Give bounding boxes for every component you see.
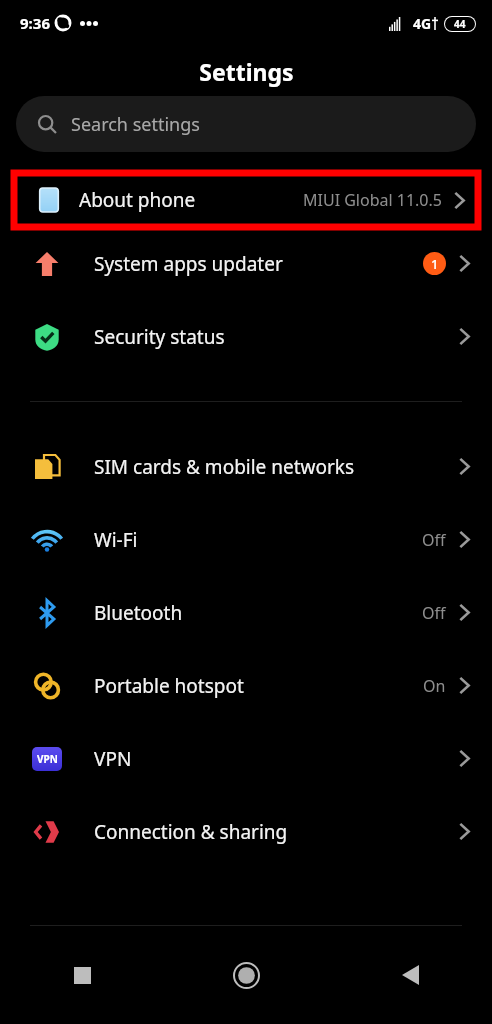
staticText: Search settings [71, 112, 200, 137]
button[interactable]: Wi-Fi [0, 503, 492, 576]
button[interactable]: About phone [19, 173, 473, 227]
staticText: Wi-Fi [94, 527, 138, 553]
staticText: About phone [79, 187, 196, 213]
staticText: Off [422, 602, 446, 624]
button[interactable]: Home [164, 926, 328, 1024]
button[interactable]: VPN [0, 722, 492, 795]
staticText: Portable hotspot [94, 673, 244, 699]
staticText: 4G [413, 14, 432, 33]
staticText: VPN [37, 752, 58, 766]
staticText: 9:36 [20, 13, 50, 33]
button[interactable]: Bluetooth [0, 576, 492, 649]
staticText: On [423, 675, 446, 697]
staticText: VPN [94, 746, 132, 772]
button[interactable]: Connection & sharing [0, 795, 492, 868]
button[interactable]: Back [328, 926, 492, 1024]
staticText: SIM cards & mobile networks [94, 454, 355, 480]
staticText: Settings [199, 56, 294, 87]
staticText: System apps updater [94, 251, 283, 277]
button[interactable]: Search settings [16, 96, 476, 152]
button[interactable]: SIM cards & mobile networks [0, 430, 492, 503]
staticText: Bluetooth [94, 600, 183, 626]
button[interactable]: Security status [0, 300, 492, 373]
button[interactable]: System apps updater [0, 227, 492, 300]
staticText: Connection & sharing [94, 819, 288, 845]
staticText: 44 [454, 17, 466, 31]
staticText: Security status [94, 324, 225, 350]
staticText: Off [422, 529, 446, 551]
staticText: MIUI Global 11.0.5 [303, 189, 442, 211]
button[interactable]: Recents [0, 926, 164, 1024]
button[interactable]: Portable hotspot [0, 649, 492, 722]
staticText: 1 [431, 255, 439, 273]
